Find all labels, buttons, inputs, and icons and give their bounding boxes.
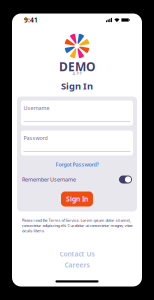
staticText: 9:41 bbox=[24, 16, 38, 24]
staticText: Username bbox=[23, 104, 49, 112]
button[interactable]: Sign In bbox=[61, 191, 93, 206]
staticText: A P P bbox=[72, 71, 81, 76]
staticText: Forgot Password? bbox=[55, 161, 98, 168]
staticText: Sign In bbox=[61, 80, 93, 92]
staticText: Careers bbox=[64, 260, 89, 269]
button[interactable]: Careers bbox=[64, 260, 89, 269]
button[interactable]: Forgot Password? bbox=[55, 161, 98, 167]
button[interactable]: Remember Username bbox=[119, 175, 132, 183]
staticText: Please read the Terms of Service. Lorem … bbox=[21, 217, 132, 233]
staticText: Contact Us bbox=[59, 250, 94, 258]
staticText: Password bbox=[23, 134, 47, 142]
button[interactable]: Contact Us bbox=[59, 250, 94, 258]
staticText: Sign In bbox=[66, 195, 88, 203]
staticText: DEMO bbox=[59, 58, 95, 74]
staticText: Remember Username bbox=[22, 176, 76, 183]
